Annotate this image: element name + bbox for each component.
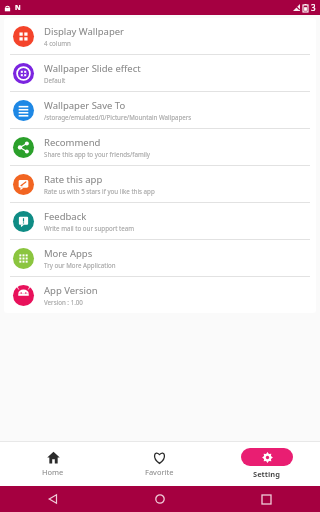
button[interactable]: App Version xyxy=(4,277,316,313)
staticText: Favorite xyxy=(145,467,174,477)
staticText: Rate this app xyxy=(44,173,103,186)
button[interactable]: Feedback xyxy=(4,203,316,239)
button[interactable]: Back xyxy=(0,486,106,512)
staticText: Share this app to your friends/family xyxy=(44,150,151,158)
button[interactable]: Recents xyxy=(213,486,320,512)
staticText: App Version xyxy=(44,284,98,297)
button[interactable]: Wallpaper Save To xyxy=(4,92,316,128)
button[interactable]: Rate this app xyxy=(4,166,316,202)
staticText: Wallpaper Slide effect xyxy=(44,62,141,75)
staticText: 4 column xyxy=(44,39,71,47)
staticText: Home xyxy=(42,467,64,477)
staticText: Feedback xyxy=(44,210,87,223)
button[interactable]: Home xyxy=(0,441,106,486)
button[interactable]: Display Wallpaper xyxy=(4,18,316,54)
staticText: Rate us with 5 stars if you like this ap… xyxy=(44,187,155,195)
button[interactable]: Home xyxy=(106,486,213,512)
staticText: Display Wallpaper xyxy=(44,25,125,38)
staticText: Try our More Application xyxy=(44,261,116,269)
staticText: More Apps xyxy=(44,247,93,260)
staticText: Wallpaper Save To xyxy=(44,99,126,112)
staticText: 3 xyxy=(311,2,316,13)
staticText: Version : 1.00 xyxy=(44,298,83,306)
staticText: Default xyxy=(44,76,66,84)
button[interactable]: Setting xyxy=(213,441,320,486)
staticText: /storage/emulated/0/Picture/Mountain Wal… xyxy=(44,113,192,121)
button[interactable]: Favorite xyxy=(106,441,213,486)
staticText: Write mail to our support team xyxy=(44,224,135,232)
staticText: N xyxy=(15,3,21,13)
button[interactable]: Recommend xyxy=(4,129,316,165)
staticText: Setting xyxy=(253,469,280,479)
staticText: Recommend xyxy=(44,136,101,149)
button[interactable]: More Apps xyxy=(4,240,316,276)
button[interactable]: Wallpaper Slide effect xyxy=(4,55,316,91)
